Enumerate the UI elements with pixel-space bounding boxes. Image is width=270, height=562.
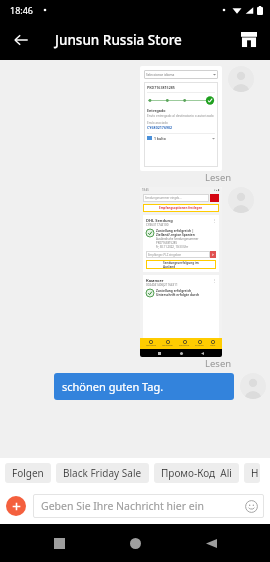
button[interactable]: Black Friday Sale: [56, 463, 149, 483]
staticText: 1 bulto: [154, 136, 166, 141]
staticText: Envío entregado al destinatario o autori…: [147, 114, 214, 118]
staticText: Verfolgen: [146, 344, 156, 347]
staticText: PKD7163815285: [147, 85, 175, 90]
staticText: Standorte: [179, 344, 190, 347]
staticText: Envío asociado: [147, 121, 168, 125]
staticText: Unterschrift erfolgte durch: [156, 293, 200, 297]
button[interactable]: Store: [234, 25, 264, 55]
staticText: 0024041406J21164311: [146, 283, 178, 287]
staticText: Entregado: [147, 108, 166, 113]
button[interactable]: Back: [6, 25, 36, 55]
staticText: Folgen: [12, 466, 44, 480]
staticText: Ausländische Sendungsnummer: [156, 237, 199, 241]
staticText: Zustellung erfolgreich,: [156, 289, 193, 293]
staticText: DHL Sendung: [146, 218, 173, 223]
staticText: Lesen: [205, 357, 232, 370]
staticText: 18:45: [142, 188, 149, 192]
staticText: >: [212, 253, 214, 257]
staticText: Geben Sie Ihre Nachricht hier ein: [41, 499, 204, 513]
button[interactable]: Hei: [244, 463, 260, 483]
button[interactable]: Recents: [42, 526, 76, 560]
staticText: Mehr: [210, 344, 216, 347]
staticText: Zielland/-region Spanien: [156, 233, 195, 237]
staticText: Zustellung erfolgreich |: [156, 229, 194, 233]
staticText: Hei: [251, 466, 253, 480]
staticText: 18:46: [10, 4, 34, 16]
button[interactable]: Tracking screenshot: [140, 66, 222, 171]
button[interactable]: schönen guten Tag.: [54, 373, 234, 400]
staticText: ⋮: [212, 218, 216, 223]
staticText: CY46311744100: [146, 223, 169, 227]
staticText: Black Friday Sale: [63, 466, 142, 480]
staticText: ▾ ▴ ▮: [214, 188, 220, 192]
staticText: Lesen: [205, 171, 232, 184]
button[interactable]: Add attachment: [6, 496, 26, 516]
staticText: PK07163815285: [156, 241, 178, 245]
staticText: Fr, 30.11.2022, 10:33 Uhr: [156, 245, 189, 249]
button[interactable]: Back: [194, 526, 228, 560]
staticText: Empfangsoptionen festlegen: [159, 206, 203, 210]
staticText: ⋮: [212, 278, 216, 283]
staticText: Junsun Russia Store: [55, 31, 182, 49]
button[interactable]: Home: [118, 526, 152, 560]
staticText: Кампоэт: [146, 278, 164, 283]
staticText: Postfach: [195, 344, 204, 347]
button[interactable]: Folgen: [5, 463, 51, 483]
staticText: Seleccionar idioma: [146, 73, 175, 77]
staticText: Empfänger-PLZ eingeben: [148, 253, 182, 257]
staticText: Промо-Код Ali: [161, 466, 232, 480]
staticText: schönen guten Tag.: [62, 379, 164, 394]
button[interactable]: Промо-Код Ali: [154, 463, 239, 483]
staticText: Sendungsnummer eingeb...: [145, 196, 182, 200]
staticText: Versenden: [162, 344, 173, 347]
button[interactable]: Emoji: [243, 498, 259, 514]
button[interactable]: DHL screenshot: [140, 187, 222, 357]
staticText: CY6802176902: [147, 125, 173, 130]
button[interactable]: Geben Sie Ihre Nachricht hier ein: [33, 494, 264, 518]
staticText: Sendungsverfolgung im Ausland: [163, 261, 199, 269]
